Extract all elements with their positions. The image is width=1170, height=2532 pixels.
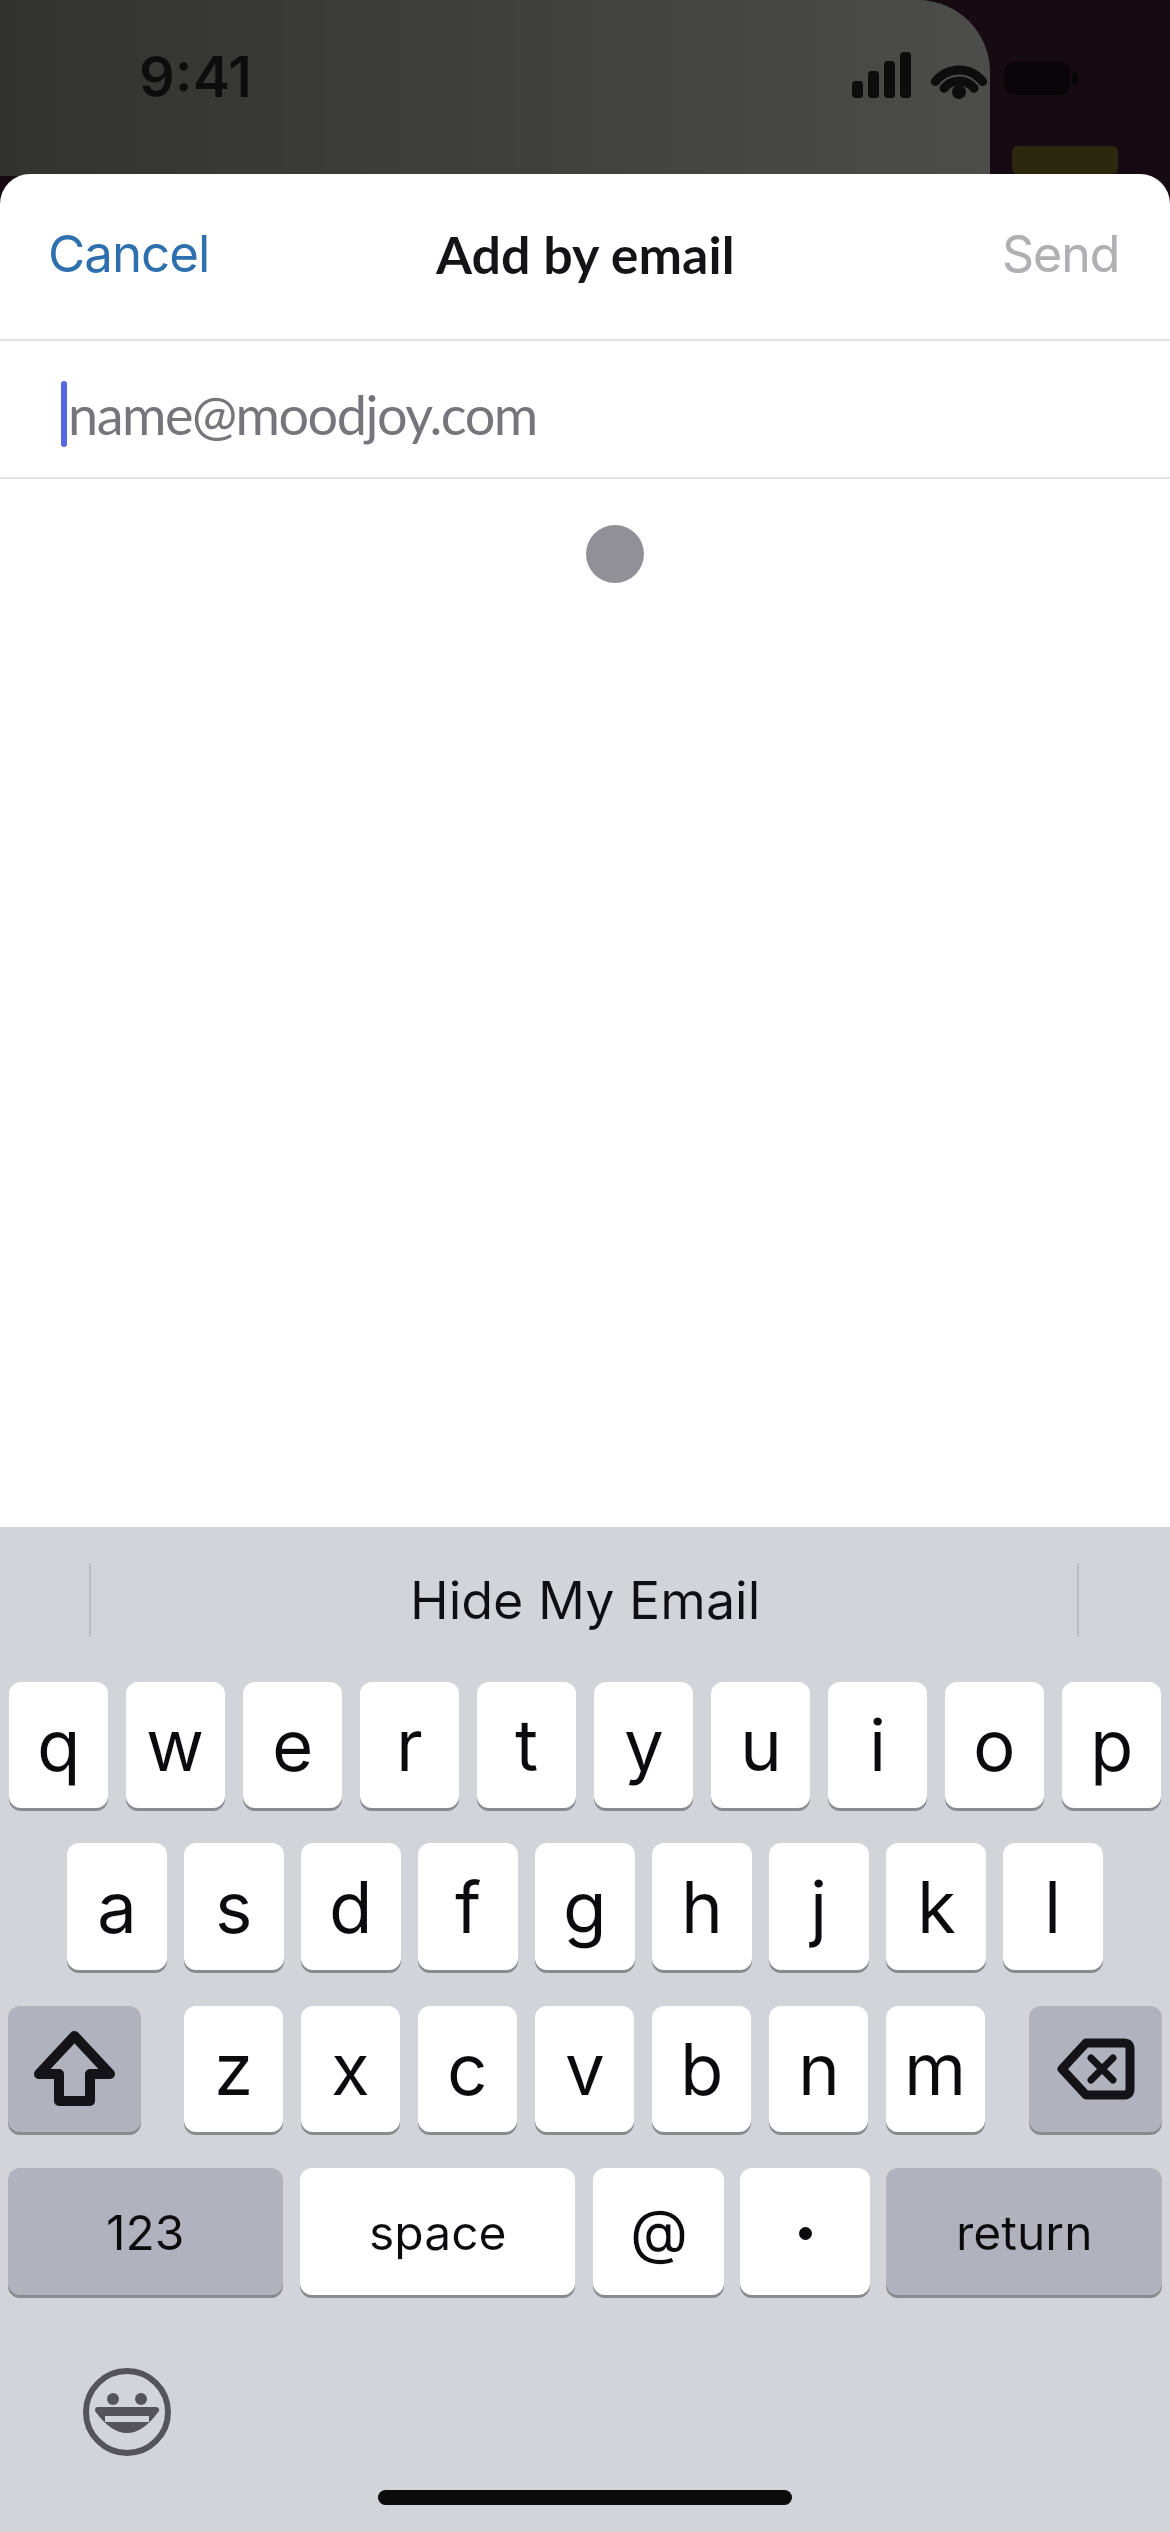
button[interactable]: b [652,2006,751,2132]
button[interactable]: c [418,2006,517,2132]
staticText: x [331,2026,370,2112]
staticText: y [624,1702,664,1788]
staticText: e [272,1702,314,1788]
button[interactable]: g [535,1843,635,1970]
button[interactable]: h [652,1843,752,1970]
staticText: s [215,1864,253,1950]
staticText: r [396,1702,423,1788]
button[interactable]: Hide My Email [200,1564,970,1636]
button[interactable] [8,2006,141,2132]
button[interactable] [0,341,1170,477]
button[interactable] [1029,2006,1162,2132]
button[interactable]: s [184,1843,284,1970]
staticText: f [455,1864,482,1950]
staticText: t [515,1702,539,1788]
staticText: return [956,2203,1093,2261]
button[interactable]: y [594,1682,693,1808]
button[interactable]: w [126,1682,225,1808]
button[interactable]: e [243,1682,342,1808]
staticText: q [37,1702,81,1788]
staticText: Send [1002,224,1120,284]
staticText: l [1044,1864,1062,1950]
staticText: i [869,1702,887,1788]
staticText: g [563,1864,607,1950]
staticText: k [917,1864,956,1950]
staticText: Cancel [48,223,210,285]
staticText: Hide My Email [410,1569,761,1632]
staticText: n [798,2026,840,2112]
button[interactable] [77,2362,177,2462]
button[interactable]: 123 [8,2168,283,2295]
staticText: name@moodjoy.com [68,382,537,447]
button[interactable]: f [418,1843,518,1970]
button[interactable]: z [184,2006,283,2132]
button[interactable]: x [301,2006,400,2132]
button[interactable]: i [828,1682,927,1808]
staticText: c [447,2026,488,2112]
button[interactable]: d [301,1843,401,1970]
button[interactable]: space [300,2168,575,2295]
button[interactable]: o [945,1682,1044,1808]
staticText: a [97,1864,137,1950]
staticText: 123 [106,2203,185,2261]
staticText: p [1090,1702,1134,1788]
staticText: space [369,2203,507,2261]
staticText: d [329,1864,373,1950]
button[interactable]: t [477,1682,576,1808]
staticText: o [973,1702,1016,1788]
staticText: j [810,1864,828,1950]
staticText: 9:41 [139,43,252,111]
button[interactable]: m [886,2006,985,2132]
button[interactable]: l [1003,1843,1103,1970]
button[interactable] [740,2168,870,2295]
button[interactable]: @ [593,2168,724,2295]
staticText: m [904,2026,967,2112]
staticText: h [681,1864,723,1950]
button[interactable]: a [67,1843,167,1970]
button[interactable]: j [769,1843,869,1970]
button[interactable]: n [769,2006,868,2132]
button[interactable]: Cancel [48,219,248,289]
staticText: u [740,1702,782,1788]
staticText: Add by email [436,223,735,285]
staticText: b [680,2026,724,2112]
button[interactable]: r [360,1682,459,1808]
button[interactable]: q [9,1682,108,1808]
staticText: w [146,1702,205,1788]
staticText: z [214,2026,254,2112]
staticText: v [565,2026,605,2112]
staticText: @ [630,2195,688,2268]
button[interactable]: return [886,2168,1162,2295]
button[interactable]: k [886,1843,986,1970]
button[interactable]: v [535,2006,634,2132]
button[interactable]: Send [920,219,1120,289]
button[interactable]: u [711,1682,810,1808]
button[interactable]: p [1062,1682,1161,1808]
